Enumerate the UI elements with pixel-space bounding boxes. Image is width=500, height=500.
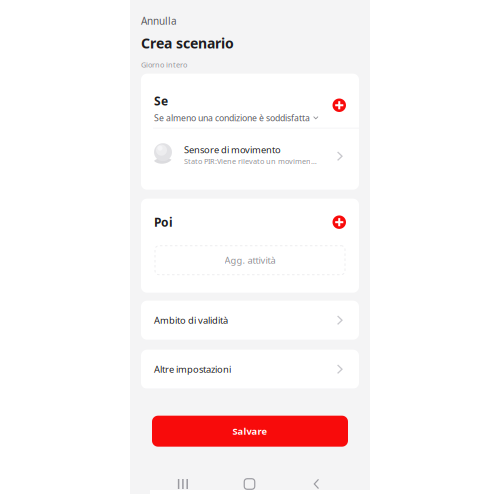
button[interactable]: Home: [216, 474, 283, 494]
staticText: Agg. attività: [224, 254, 275, 266]
button[interactable]: Ambito di validità: [141, 301, 359, 340]
staticText: Giorno intero: [141, 60, 187, 70]
staticText: Crea scenario: [141, 34, 234, 53]
staticText: Stato PIR:Viene rilevato un movimento.: [184, 156, 319, 166]
button[interactable]: Aggiungi condizione: [329, 95, 349, 115]
staticText: Salvare: [232, 425, 267, 437]
button[interactable]: Aggiungi attività: [329, 212, 349, 232]
button[interactable]: Indietro: [283, 474, 350, 494]
staticText: Ambito di validità: [154, 314, 228, 326]
button[interactable]: Agg. attività: [155, 246, 345, 275]
staticText: Se: [154, 93, 168, 109]
staticText: Se almeno una condizione è soddisfatta: [154, 112, 310, 124]
button[interactable]: Annulla: [130, 10, 185, 32]
button[interactable]: Sensore di movimento: [141, 129, 359, 190]
staticText: Altre impostazioni: [154, 363, 231, 375]
button[interactable]: Altre impostazioni: [141, 350, 359, 389]
staticText: Sensore di movimento: [184, 143, 281, 156]
button[interactable]: Recenti: [150, 474, 216, 494]
staticText: Annulla: [141, 14, 177, 28]
button[interactable]: Salvare: [152, 416, 348, 447]
staticText: Poi: [154, 214, 173, 230]
